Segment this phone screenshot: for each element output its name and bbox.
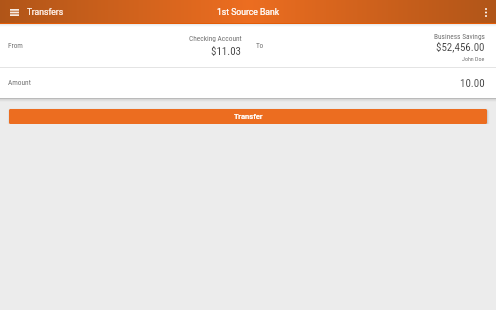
staticText: Checking Account xyxy=(189,34,242,43)
staticText: To xyxy=(256,41,264,50)
staticText: Transfers xyxy=(27,7,64,17)
staticText: Amount xyxy=(8,78,31,87)
staticText: Business Savings xyxy=(434,32,485,41)
staticText: 1st Source Bank xyxy=(217,7,280,17)
button[interactable]: Amount xyxy=(0,68,496,98)
staticText: 10.00 xyxy=(460,77,485,90)
button[interactable]: Transfer xyxy=(9,109,487,124)
staticText: From xyxy=(8,41,23,50)
staticText: $11.03 xyxy=(211,45,242,58)
button[interactable]: From xyxy=(0,27,496,67)
staticText: $52,456.00 xyxy=(436,41,485,54)
button[interactable]: More options xyxy=(478,4,494,20)
staticText: John Doe xyxy=(462,55,485,62)
staticText: Transfer xyxy=(234,112,263,121)
button[interactable]: Open navigation menu xyxy=(5,3,23,21)
